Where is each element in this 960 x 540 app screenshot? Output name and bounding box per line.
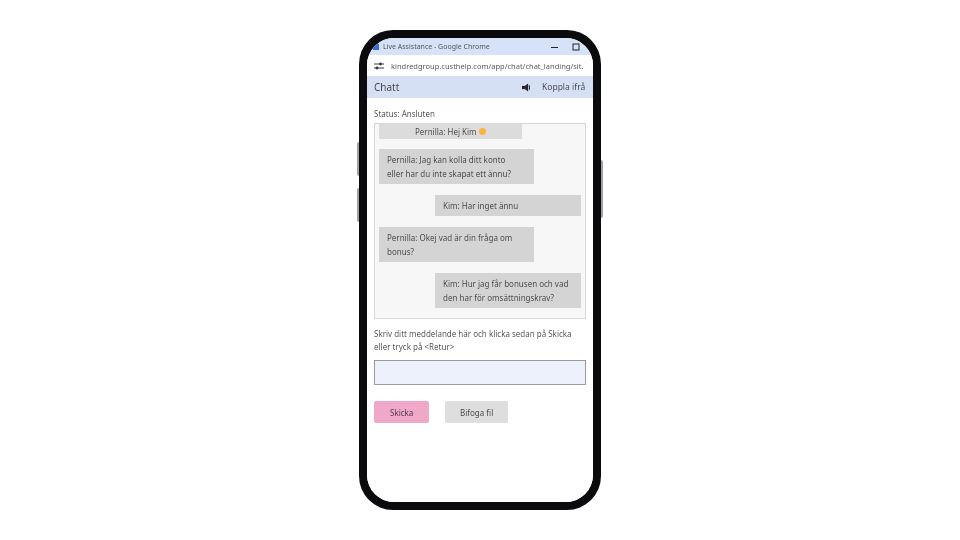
button[interactable]: Sound <box>518 79 534 95</box>
staticText: Live Assistance - Google Chrome <box>383 42 490 52</box>
staticText: Pernilla: Jag kan kolla ditt konto <box>387 154 506 165</box>
staticText: eller tryck på <Retur> <box>374 341 455 352</box>
other: Site settings <box>373 60 385 72</box>
staticText: Skriv ditt meddelande här och klicka sed… <box>374 328 572 339</box>
staticText: kindredgroup.custhelp.com/app/chat/chat_… <box>391 61 584 71</box>
staticText: bonus? <box>387 246 414 257</box>
staticText: Koppla ifrå <box>542 81 586 93</box>
button[interactable] <box>374 360 586 385</box>
staticText: Pernilla: Hej Kim <box>415 126 479 137</box>
button[interactable]: Skicka <box>374 401 429 423</box>
button[interactable]: Maximize <box>569 40 583 54</box>
button[interactable]: Minimize <box>547 40 561 54</box>
staticText: Status: Ansluten <box>374 108 435 119</box>
button[interactable]: Site settings <box>367 55 593 76</box>
staticText: Kim: Har inget ännu <box>443 200 519 211</box>
staticText: eller har du inte skapat ett ännu? <box>387 168 511 179</box>
staticText: den har för omsättningskrav? <box>443 292 554 303</box>
staticText: Chatt <box>374 80 400 94</box>
staticText: Kim: Hur jag får bonusen och vad <box>443 278 569 289</box>
button[interactable]: Bifoga fil <box>445 401 508 423</box>
button[interactable]: Koppla ifrå <box>542 81 586 93</box>
staticText: Pernilla: Okej vad är din fråga om <box>387 232 513 243</box>
staticText: Bifoga fil <box>460 407 494 418</box>
staticText: Skicka <box>390 407 414 418</box>
